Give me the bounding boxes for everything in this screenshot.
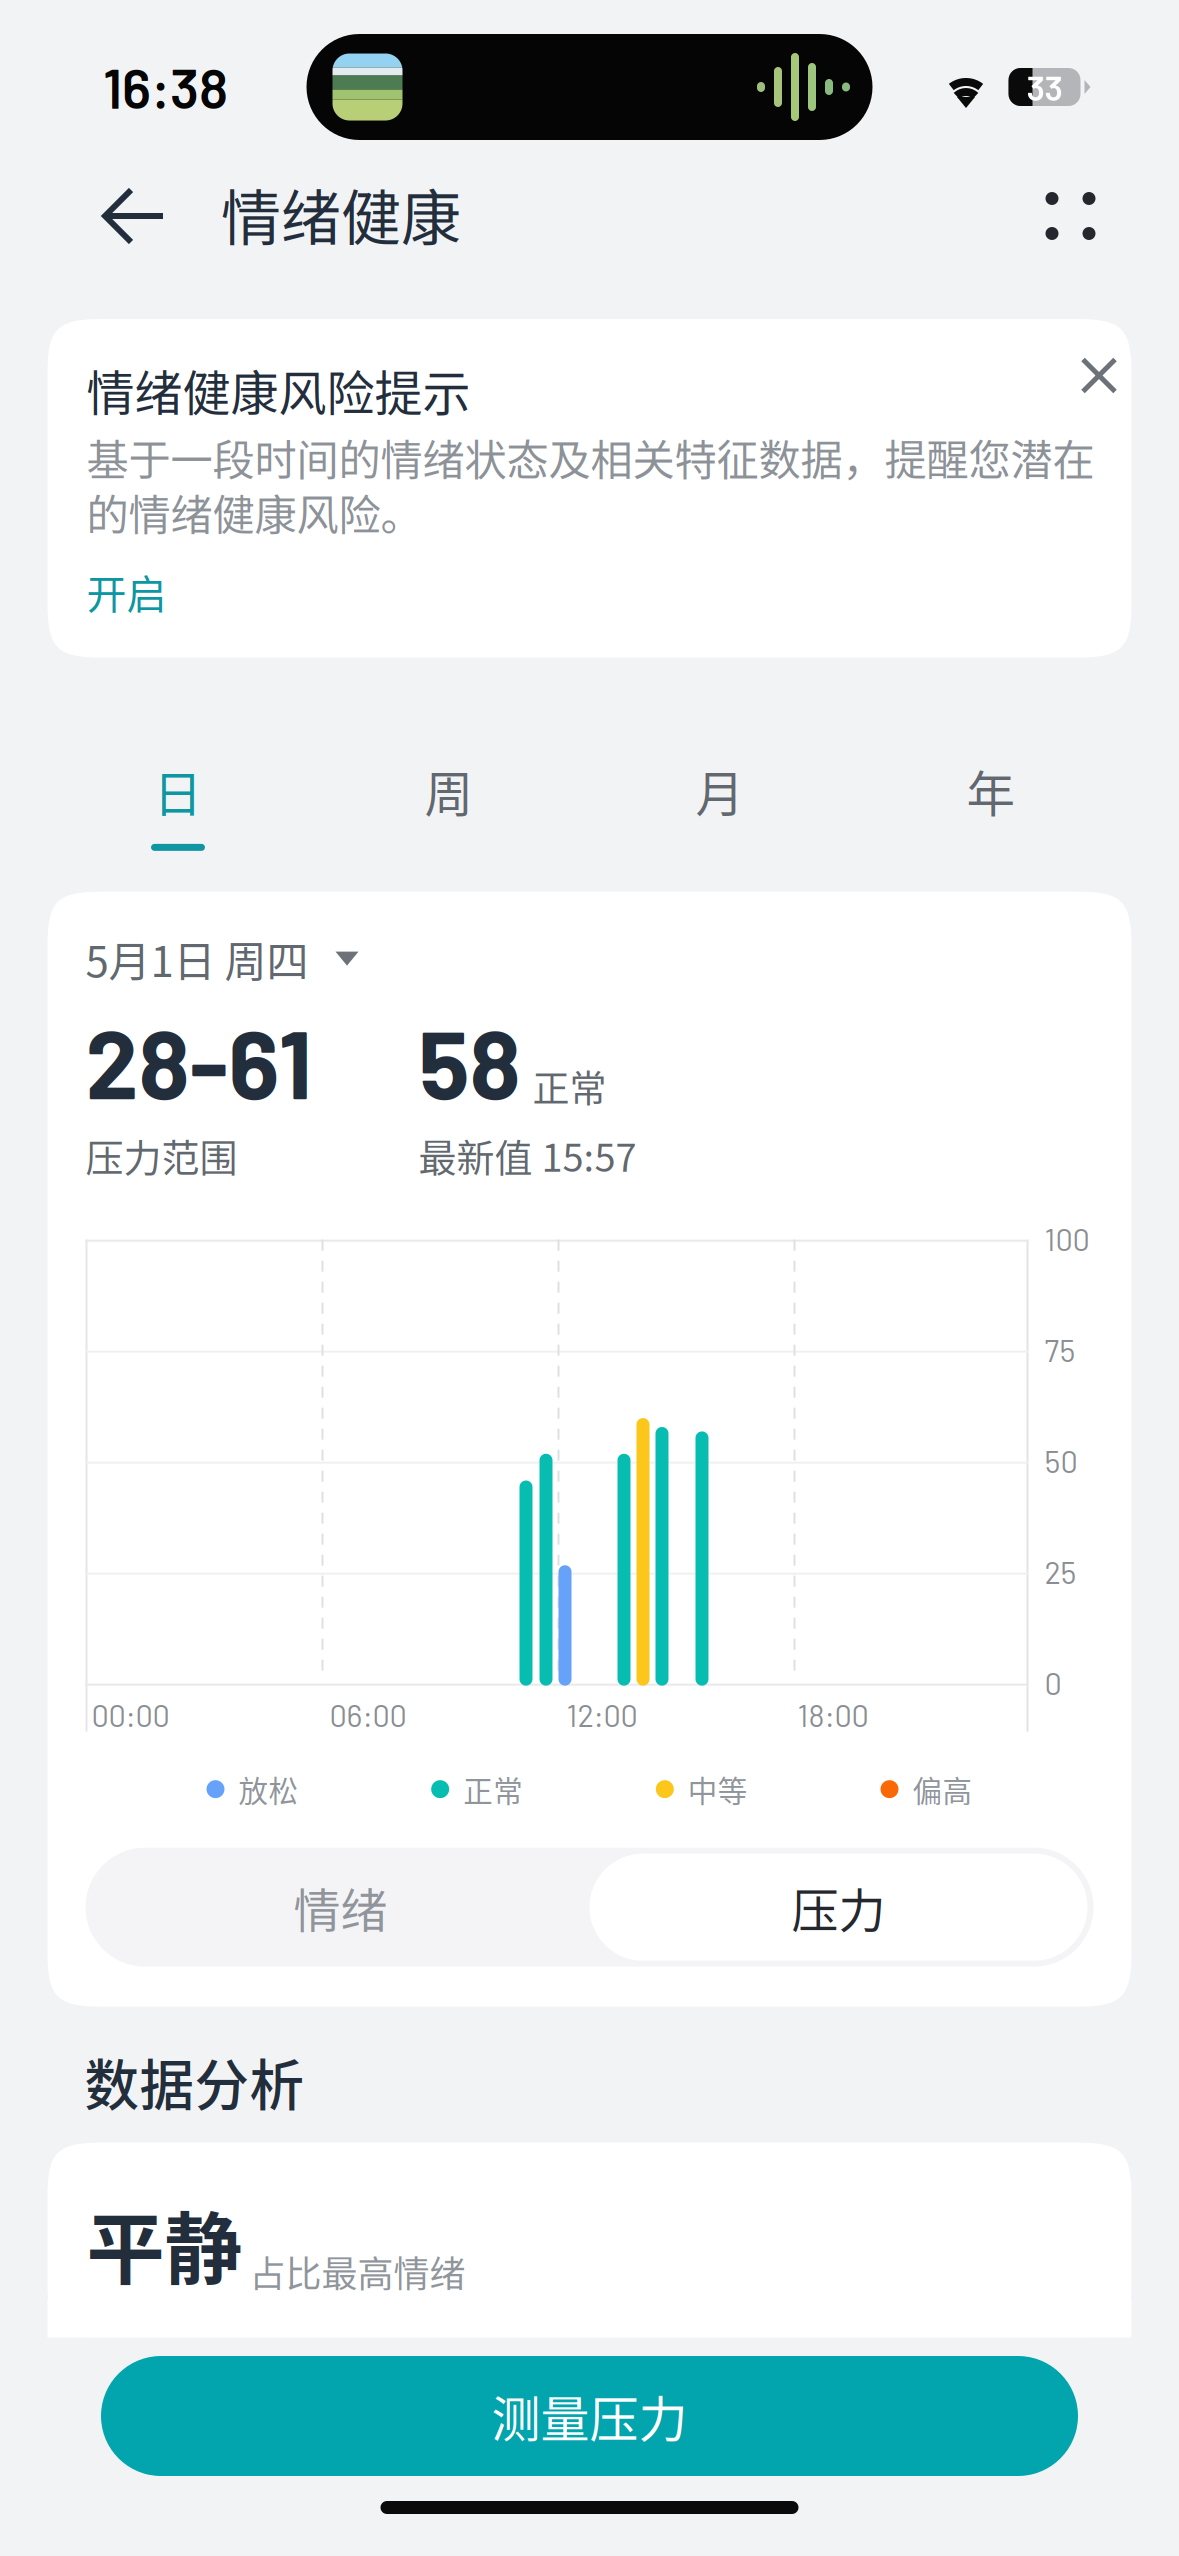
staticText: 最新值 15:57 <box>418 1128 636 1183</box>
button[interactable]: 测量压力 <box>101 2356 1078 2476</box>
staticText: 0 <box>1044 1664 1061 1701</box>
button[interactable]: 压力 <box>589 1854 1087 1961</box>
staticText: 占比最高情绪 <box>249 2245 465 2297</box>
button[interactable]: 情绪 <box>91 1854 589 1961</box>
staticText: 开启 <box>86 563 166 621</box>
staticText: 75 <box>1044 1331 1075 1368</box>
staticText: 年 <box>966 756 1015 826</box>
staticText: 情绪健康 <box>221 171 461 257</box>
staticText: 25 <box>1044 1553 1076 1590</box>
button[interactable]: 返回 <box>0 166 221 266</box>
staticText: 28-61 <box>85 1005 312 1118</box>
staticText: 情绪健康风险提示 <box>86 355 470 424</box>
staticText: 00:00 <box>91 1696 169 1733</box>
button[interactable]: 关闭 <box>1056 355 1124 410</box>
staticText: 33 <box>1026 66 1062 108</box>
button[interactable]: 年 <box>860 658 1131 892</box>
staticText: 测量压力 <box>491 2380 687 2451</box>
staticText: 月 <box>695 756 744 826</box>
staticText: 16:38 <box>103 54 228 120</box>
staticText: 偏高 <box>912 1768 972 1810</box>
button[interactable]: 更多选项 <box>1016 166 1179 265</box>
staticText: 正常 <box>532 1060 606 1113</box>
staticText: 压力范围 <box>85 1128 237 1183</box>
staticText: 数据分析 <box>84 2042 304 2121</box>
staticText: 基于一段时间的情绪状态及相关特征数据，提醒您潜在的情绪健康风险。 <box>86 426 1094 543</box>
button[interactable]: 开启 <box>86 563 1124 621</box>
staticText: 压力 <box>791 1873 885 1941</box>
button[interactable]: 周 <box>318 658 589 892</box>
staticText: 18:00 <box>797 1696 868 1733</box>
staticText: 100 <box>1044 1220 1089 1257</box>
staticText: 5月1日 周四 <box>85 928 308 989</box>
staticText: 平静 <box>86 2188 242 2300</box>
staticText: 06:00 <box>329 1696 406 1733</box>
staticText: 日 <box>153 756 202 826</box>
staticText: 正常 <box>463 1768 523 1810</box>
staticText: 12:00 <box>566 1696 637 1733</box>
staticText: 50 <box>1044 1442 1077 1479</box>
staticText: 周 <box>424 756 473 826</box>
staticText: 放松 <box>238 1768 298 1810</box>
staticText: 中等 <box>688 1768 748 1810</box>
staticText: 情绪 <box>293 1873 387 1941</box>
button[interactable]: 5月1日 周四 <box>85 931 1093 987</box>
staticText: 58 <box>418 1005 520 1118</box>
button[interactable]: 月 <box>589 658 860 892</box>
button[interactable]: 日 <box>47 658 318 892</box>
